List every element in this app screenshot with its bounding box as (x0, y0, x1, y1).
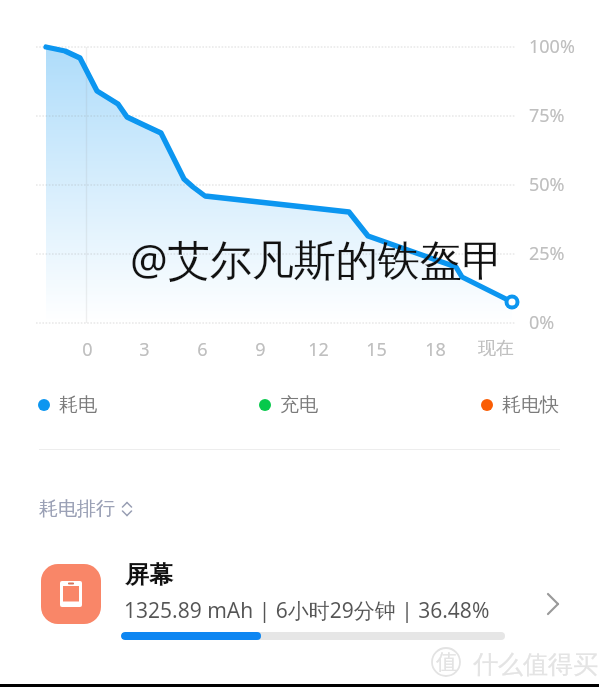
button[interactable]: 充电 (259, 393, 318, 417)
staticText: 9 (255, 337, 266, 362)
staticText: 什么值得买 (473, 649, 598, 680)
staticText: 18 (425, 337, 446, 362)
staticText: 6 (197, 337, 208, 362)
staticText: 屏幕 (125, 560, 173, 590)
button[interactable]: 屏幕 (0, 548, 599, 644)
staticText: 现在 (478, 337, 514, 360)
button[interactable]: 耗电 (38, 393, 97, 417)
staticText: 100% (529, 34, 575, 58)
staticText: 75% (529, 103, 565, 127)
staticText: 耗电 (59, 393, 97, 417)
staticText: 3 (139, 337, 150, 362)
staticText: 耗电快 (502, 393, 559, 417)
button[interactable]: Details (538, 589, 568, 619)
staticText: 充电 (280, 393, 318, 417)
button[interactable]: 耗电排行 (39, 497, 133, 521)
staticText: 值 (436, 649, 457, 675)
staticText: 15 (366, 337, 387, 362)
staticText: 耗电排行 (39, 497, 115, 521)
button[interactable]: 耗电快 (481, 393, 559, 417)
staticText: 0% (529, 310, 555, 334)
staticText: @艾尔凡斯的铁盔甲 (130, 230, 504, 287)
staticText: 25% (529, 241, 565, 265)
staticText: 50% (529, 172, 565, 196)
staticText: 12 (308, 337, 329, 362)
staticText: 0 (82, 337, 93, 362)
staticText: 1325.89 mAh | 6小时29分钟 | 36.48% (124, 596, 490, 625)
